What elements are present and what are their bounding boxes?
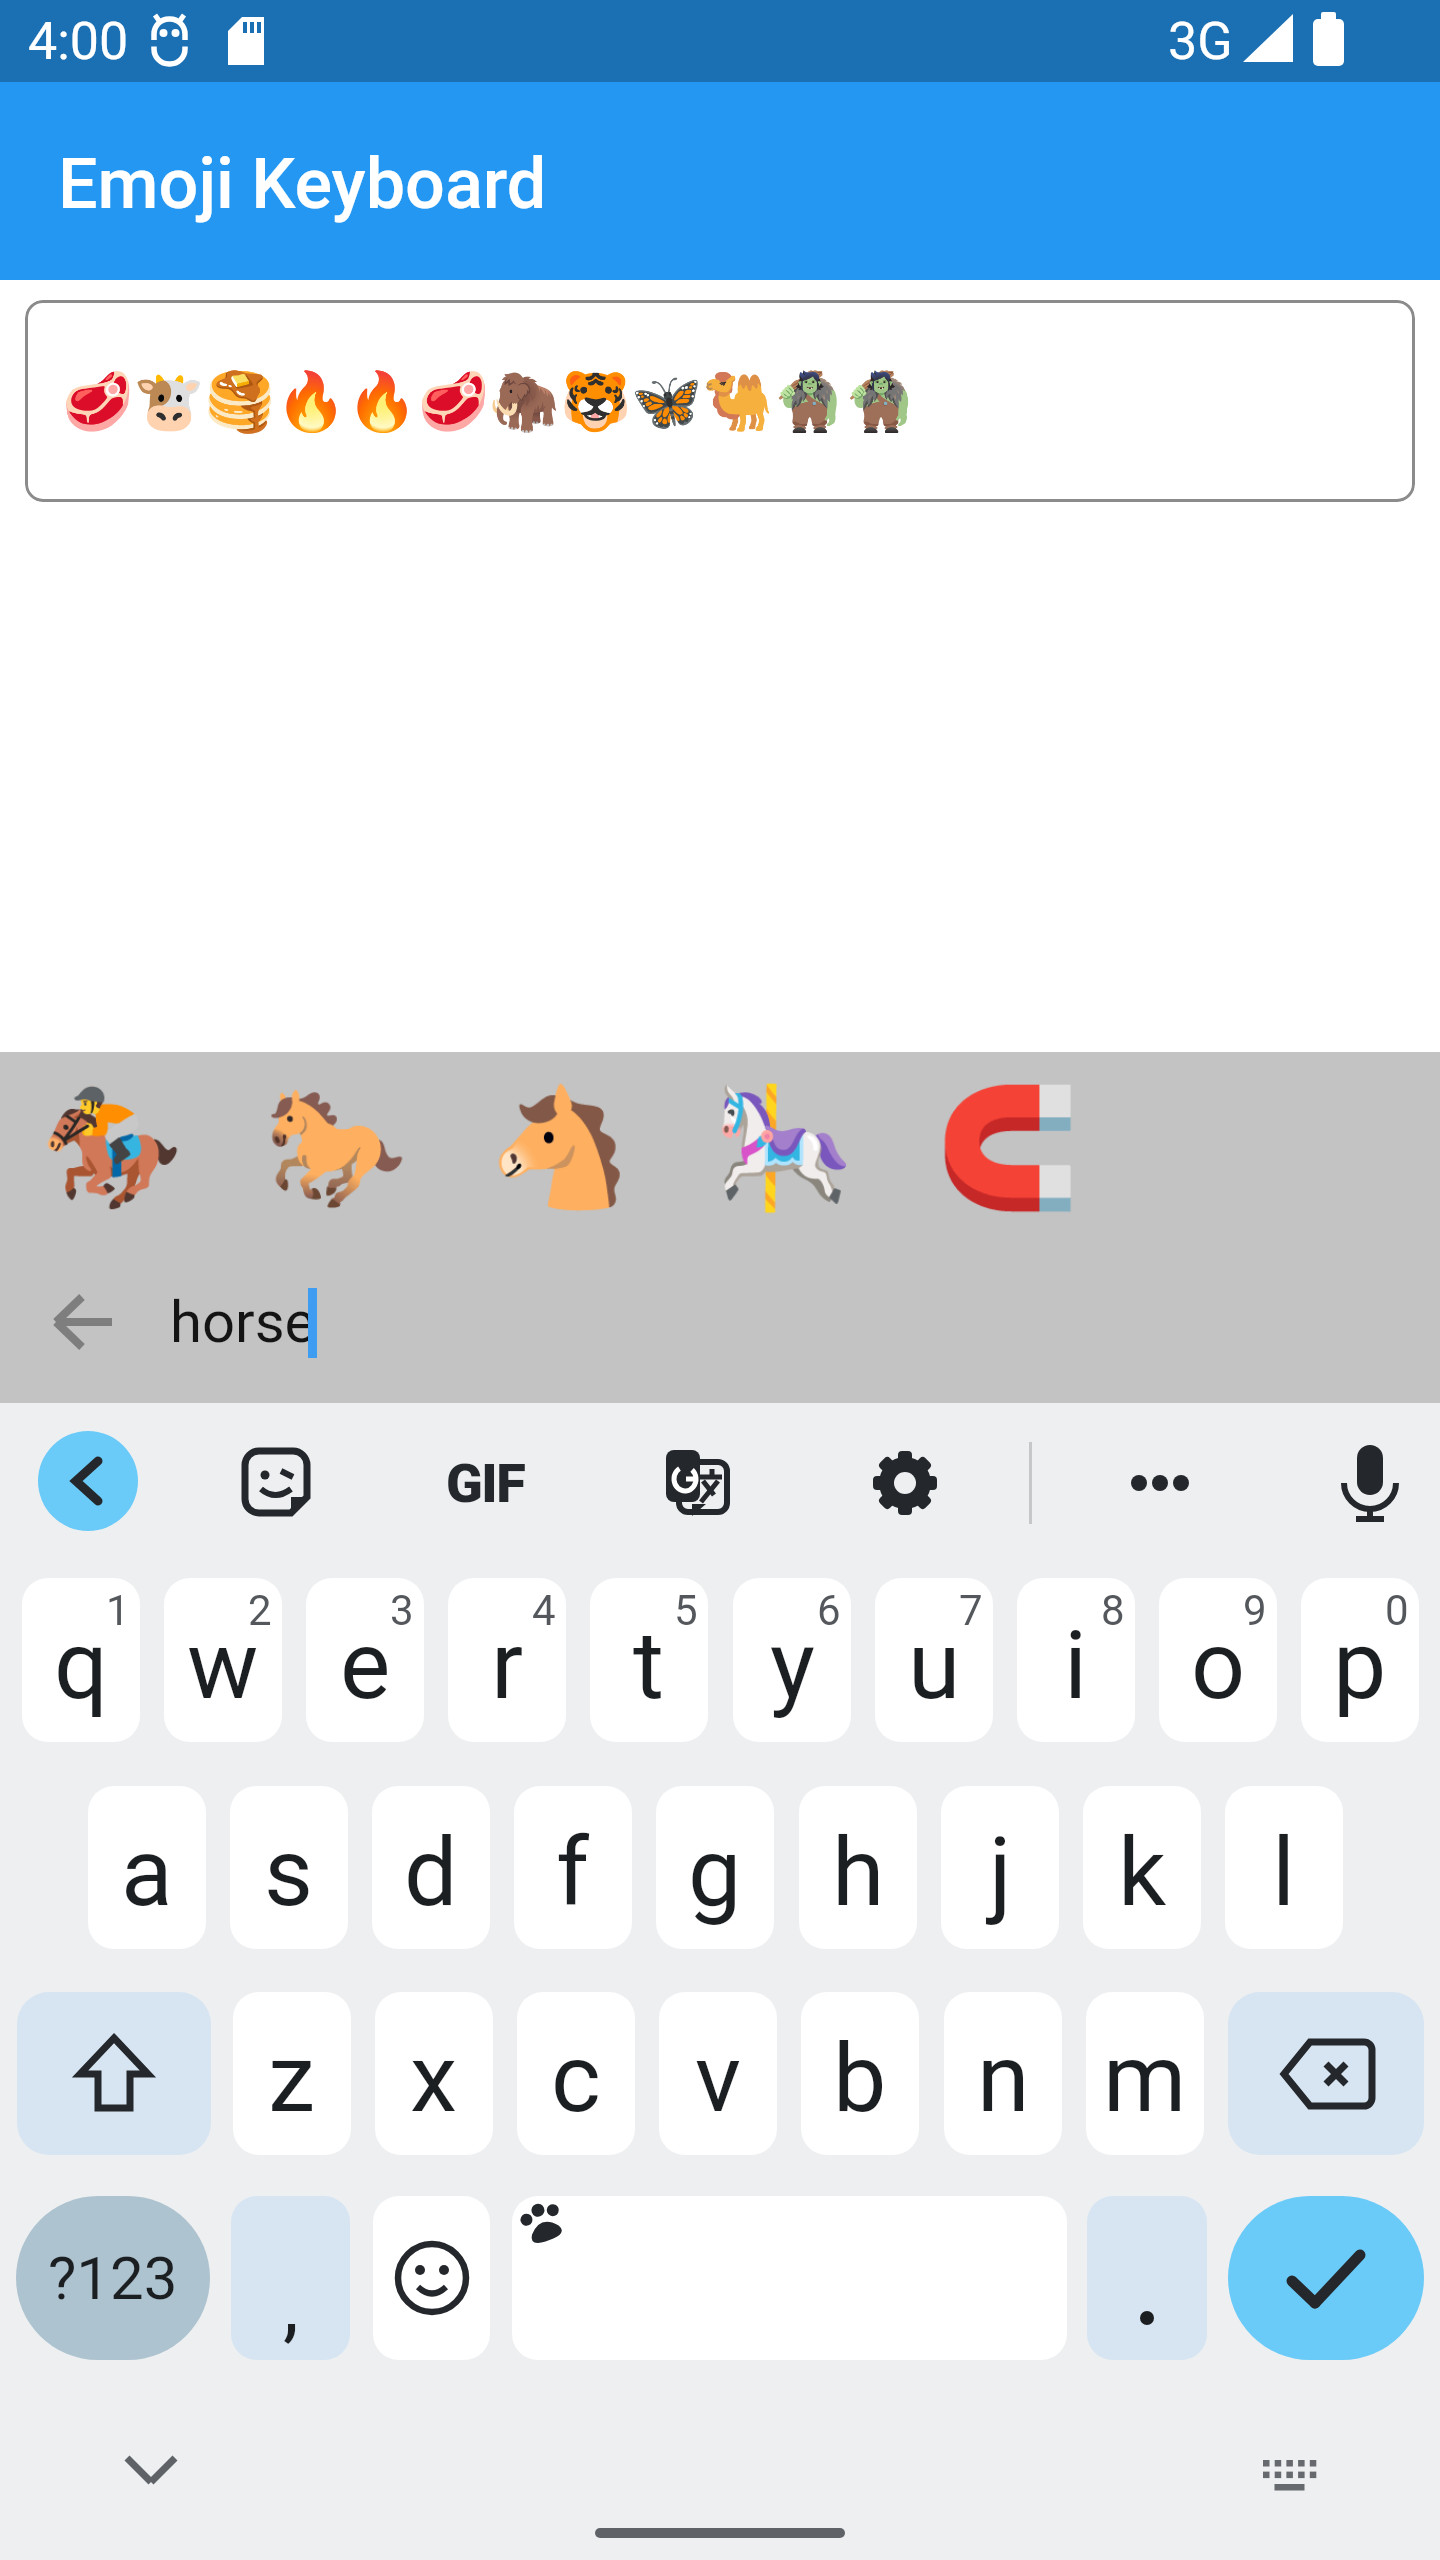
- button[interactable]: d: [372, 1786, 490, 1949]
- button[interactable]: 🐎: [224, 1072, 448, 1222]
- staticText: 6: [817, 1586, 841, 1635]
- button[interactable]: [1249, 2437, 1339, 2517]
- staticText: g: [688, 1817, 742, 1928]
- button[interactable]: 🧲: [896, 1072, 1120, 1222]
- button[interactable]: [512, 2196, 1067, 2360]
- button[interactable]: 🏇: [0, 1072, 224, 1222]
- staticText: 🎠: [712, 1080, 856, 1215]
- button[interactable]: k: [1083, 1786, 1201, 1949]
- button[interactable]: [50, 1292, 114, 1352]
- staticText: t: [633, 1610, 665, 1721]
- staticText: m: [1103, 2023, 1187, 2134]
- button[interactable]: h: [799, 1786, 917, 1949]
- button[interactable]: m: [1086, 1992, 1204, 2155]
- staticText: GIF: [446, 1452, 525, 1515]
- button[interactable]: e: [306, 1578, 424, 1742]
- staticText: f: [556, 1817, 590, 1928]
- staticText: 🧲: [936, 1080, 1080, 1215]
- staticText: v: [695, 2023, 742, 2134]
- button[interactable]: [1087, 2196, 1207, 2360]
- staticText: ?123: [48, 2243, 178, 2313]
- button[interactable]: [1228, 2196, 1424, 2360]
- button[interactable]: q: [22, 1578, 140, 1742]
- staticText: horse: [170, 1288, 316, 1356]
- staticText: 2: [248, 1586, 272, 1635]
- staticText: l: [1272, 1817, 1296, 1928]
- staticText: x: [410, 2023, 458, 2134]
- button[interactable]: b: [801, 1992, 919, 2155]
- button[interactable]: 🥩🐮🥞🔥🔥🥩🦣🐯🦋🐫🧌🧌: [25, 300, 1415, 502]
- button[interactable]: f: [514, 1786, 632, 1949]
- button[interactable]: c: [517, 1992, 635, 2155]
- button[interactable]: [241, 1447, 313, 1519]
- button[interactable]: o: [1159, 1578, 1277, 1742]
- button[interactable]: [373, 2196, 490, 2360]
- staticText: 🥩🐮🥞🔥🔥🥩🦣🐯🦋🐫🧌🧌: [62, 368, 916, 435]
- button[interactable]: [38, 1431, 138, 1531]
- button[interactable]: s: [230, 1786, 348, 1949]
- staticText: z: [268, 2023, 316, 2134]
- staticText: o: [1191, 1610, 1246, 1721]
- button[interactable]: [1340, 1443, 1400, 1525]
- staticText: 1: [106, 1586, 130, 1635]
- staticText: 🐎: [264, 1080, 408, 1215]
- staticText: q: [54, 1610, 108, 1721]
- staticText: 7: [959, 1586, 983, 1635]
- staticText: p: [1333, 1610, 1387, 1721]
- staticText: 0: [1385, 1586, 1409, 1635]
- button[interactable]: u: [875, 1578, 993, 1742]
- button[interactable]: [105, 2430, 197, 2518]
- staticText: 🐴: [488, 1080, 632, 1215]
- button[interactable]: [873, 1451, 937, 1515]
- button[interactable]: [1228, 1992, 1424, 2155]
- staticText: k: [1118, 1817, 1167, 1928]
- staticText: b: [833, 2023, 887, 2134]
- button[interactable]: n: [944, 1992, 1062, 2155]
- button[interactable]: 🎠: [672, 1072, 896, 1222]
- staticText: e: [340, 1610, 391, 1721]
- staticText: ,: [283, 2259, 299, 2353]
- staticText: s: [264, 1817, 314, 1928]
- staticText: 3: [390, 1586, 414, 1635]
- staticText: 3G: [1168, 11, 1233, 72]
- staticText: Emoji Keyboard: [58, 143, 547, 225]
- button[interactable]: [17, 1992, 211, 2155]
- staticText: r: [491, 1610, 524, 1721]
- staticText: h: [832, 1817, 885, 1928]
- button[interactable]: i: [1017, 1578, 1135, 1742]
- button[interactable]: GIF: [430, 1445, 540, 1521]
- staticText: a: [121, 1817, 173, 1928]
- staticText: 5: [674, 1586, 698, 1635]
- staticText: 🏇: [40, 1080, 184, 1215]
- staticText: d: [404, 1817, 458, 1928]
- button[interactable]: p: [1301, 1578, 1419, 1742]
- staticText: c: [551, 2023, 601, 2134]
- staticText: i: [1064, 1610, 1088, 1721]
- staticText: n: [977, 2023, 1030, 2134]
- button[interactable]: g: [656, 1786, 774, 1949]
- button[interactable]: x: [375, 1992, 493, 2155]
- button[interactable]: r: [448, 1578, 566, 1742]
- staticText: y: [770, 1610, 815, 1721]
- staticText: w: [187, 1610, 259, 1721]
- staticText: 8: [1101, 1586, 1125, 1635]
- button[interactable]: a: [88, 1786, 206, 1949]
- staticText: 4:00: [28, 11, 129, 72]
- button[interactable]: ,: [231, 2196, 350, 2360]
- button[interactable]: ?123: [16, 2196, 210, 2360]
- staticText: 4: [532, 1586, 556, 1635]
- button[interactable]: w: [164, 1578, 282, 1742]
- button[interactable]: [1120, 1460, 1200, 1506]
- staticText: u: [908, 1610, 961, 1721]
- button[interactable]: z: [233, 1992, 351, 2155]
- button[interactable]: [666, 1450, 732, 1516]
- button[interactable]: v: [659, 1992, 777, 2155]
- button[interactable]: j: [941, 1786, 1059, 1949]
- staticText: 9: [1243, 1586, 1267, 1635]
- button[interactable]: y: [733, 1578, 851, 1742]
- button[interactable]: l: [1225, 1786, 1343, 1949]
- button[interactable]: 🐴: [448, 1072, 672, 1222]
- staticText: j: [989, 1817, 1012, 1928]
- button[interactable]: t: [590, 1578, 708, 1742]
